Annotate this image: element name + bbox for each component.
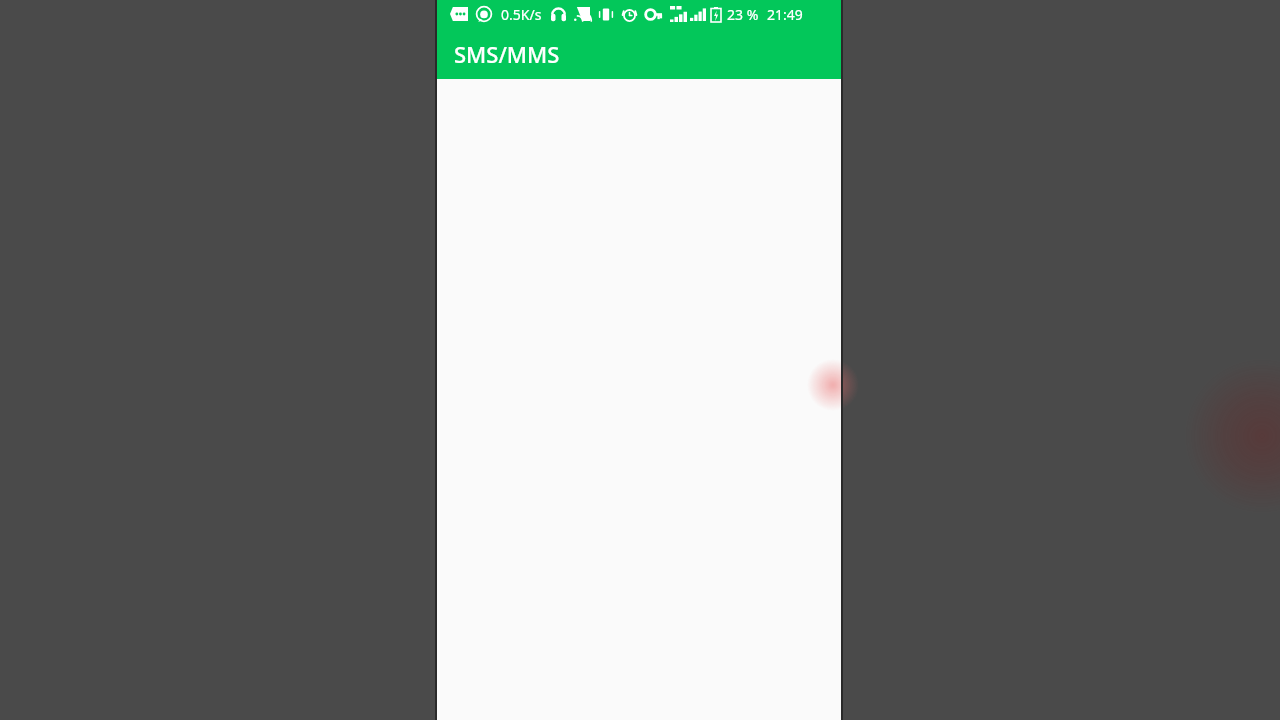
staticText: 23 % <box>727 5 759 24</box>
staticText: SMS/MMS <box>454 39 560 69</box>
staticText: 21:49 <box>767 5 803 24</box>
staticText: 0.5K/s <box>501 5 542 24</box>
button[interactable]: SMS/MMS <box>436 28 842 79</box>
